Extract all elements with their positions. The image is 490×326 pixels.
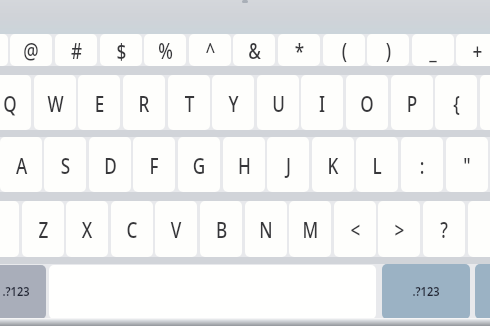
button[interactable]: ^ — [189, 34, 231, 66]
staticText: X — [81, 214, 92, 244]
staticText: & — [248, 35, 261, 65]
button[interactable]: A — [0, 137, 42, 192]
staticText: < — [350, 214, 360, 244]
button[interactable]: M — [289, 201, 331, 257]
button[interactable]: B — [200, 201, 242, 257]
button[interactable]: F — [133, 137, 175, 192]
staticText: ( — [342, 35, 347, 65]
button[interactable]: Y — [212, 75, 254, 130]
button[interactable]: > — [378, 201, 420, 257]
staticText: { — [453, 88, 460, 118]
button[interactable]: Q — [0, 75, 31, 130]
staticText: G — [193, 150, 205, 180]
button[interactable]: N — [245, 201, 287, 257]
button[interactable]: _ — [412, 34, 454, 66]
staticText: V — [170, 214, 181, 244]
button[interactable]: $ — [100, 34, 142, 66]
staticText: * — [294, 35, 304, 65]
staticText: M — [302, 214, 319, 244]
button[interactable]: @ — [10, 34, 52, 66]
staticText: B — [216, 214, 227, 244]
staticText: R — [138, 88, 149, 118]
staticText: Z — [38, 214, 48, 244]
staticText: # — [71, 35, 82, 65]
button[interactable]: X — [66, 201, 108, 257]
button[interactable]: Keyboard — [475, 264, 490, 319]
staticText: F — [149, 150, 159, 180]
button[interactable]: .?123 — [382, 264, 470, 319]
button[interactable]: # — [55, 34, 97, 66]
button[interactable]: * — [278, 34, 320, 66]
button[interactable]: Z — [22, 201, 64, 257]
button[interactable]: " — [446, 137, 488, 192]
staticText: S — [60, 150, 70, 180]
staticText: " — [463, 150, 471, 180]
button[interactable]: H — [223, 137, 265, 192]
staticText: H — [238, 150, 251, 180]
staticText: Q — [3, 88, 17, 118]
staticText: W — [47, 88, 64, 118]
staticText: + — [472, 35, 482, 65]
staticText: K — [327, 150, 338, 180]
staticText: .?123 — [2, 282, 30, 300]
staticText: $ — [116, 35, 126, 65]
staticText: C — [126, 214, 137, 244]
button[interactable]: T — [168, 75, 210, 130]
button[interactable]: I — [301, 75, 343, 130]
button[interactable]: C — [111, 201, 153, 257]
staticText: O — [360, 88, 374, 118]
staticText: I — [319, 88, 325, 118]
staticText: ? — [440, 214, 448, 244]
button[interactable]: ( — [323, 34, 365, 66]
button[interactable]: K — [312, 137, 354, 192]
button[interactable]: P — [391, 75, 433, 130]
button[interactable]: V — [155, 201, 197, 257]
button[interactable]: W — [34, 75, 76, 130]
staticText: P — [406, 88, 417, 118]
staticText: .?123 — [412, 282, 440, 300]
button[interactable]: G — [178, 137, 220, 192]
button[interactable]: J — [267, 137, 309, 192]
staticText: _ — [429, 35, 437, 65]
button[interactable]: ) — [367, 34, 409, 66]
button[interactable]: U — [257, 75, 299, 130]
button[interactable]: % — [144, 34, 186, 66]
staticText: @ — [23, 35, 39, 65]
button[interactable]: + — [456, 34, 490, 66]
staticText: A — [16, 150, 27, 180]
staticText: J — [286, 150, 291, 180]
staticText: % — [158, 35, 173, 65]
staticText: ) — [386, 35, 391, 65]
button[interactable]: E — [78, 75, 120, 130]
staticText: ^ — [205, 35, 215, 65]
staticText: Y — [228, 88, 238, 118]
button[interactable]: < — [334, 201, 376, 257]
button[interactable]: O — [346, 75, 388, 130]
button[interactable]: ! — [0, 34, 8, 66]
staticText: > — [394, 214, 404, 244]
button[interactable]: S — [44, 137, 86, 192]
staticText: L — [372, 150, 382, 180]
button[interactable]: L — [356, 137, 398, 192]
button[interactable]: R — [123, 75, 165, 130]
button[interactable]: D — [89, 137, 131, 192]
staticText: D — [104, 150, 117, 180]
staticText: T — [184, 88, 194, 118]
staticText: U — [272, 88, 285, 118]
button[interactable]: ? — [423, 201, 465, 257]
staticText: N — [259, 214, 273, 244]
button[interactable]: : — [401, 137, 443, 192]
button[interactable]: { — [435, 75, 477, 130]
staticText: : — [420, 150, 424, 180]
button[interactable]: .?123 — [0, 265, 46, 319]
staticText: E — [94, 88, 104, 118]
button[interactable]: & — [233, 34, 275, 66]
